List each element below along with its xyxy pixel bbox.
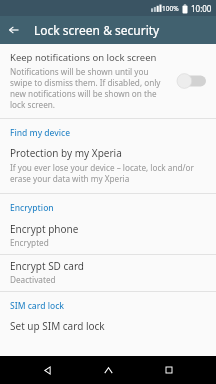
staticText: Notifications will be shown until you sw… xyxy=(10,66,168,110)
button[interactable]: Encrypt phone xyxy=(0,218,216,254)
button[interactable]: Keep notifications on lock screen xyxy=(0,44,216,118)
button[interactable]: Home xyxy=(94,356,122,384)
staticText: Protection by my Xperia xyxy=(10,146,122,160)
staticText: Keep notifications on lock screen xyxy=(10,51,157,64)
staticText: Encrypt SD card xyxy=(10,259,85,273)
staticText: Lock screen & security xyxy=(34,22,160,38)
staticText: 100% xyxy=(162,4,179,13)
button[interactable]: Protection by my Xperia xyxy=(0,143,216,193)
button[interactable]: Recent apps xyxy=(155,356,183,384)
staticText: Set up SIM card lock xyxy=(10,319,105,333)
button[interactable]: Back xyxy=(33,356,61,384)
staticText: Find my device xyxy=(10,127,71,139)
button[interactable]: Navigate up xyxy=(0,16,28,44)
staticText: Encrypt phone xyxy=(10,222,79,236)
staticText: If you ever lose your device – locate, l… xyxy=(10,162,206,184)
button[interactable]: Encrypt SD card xyxy=(0,255,216,291)
staticText: SIM card lock xyxy=(10,300,65,312)
staticText: Encrypted xyxy=(10,237,49,248)
staticText: Encryption xyxy=(10,202,54,214)
staticText: 10:00 xyxy=(191,3,212,14)
staticText: Deactivated xyxy=(10,274,56,285)
button[interactable]: Keep notifications on lock screen toggle xyxy=(174,70,208,92)
button[interactable]: Set up SIM card lock xyxy=(0,316,216,343)
